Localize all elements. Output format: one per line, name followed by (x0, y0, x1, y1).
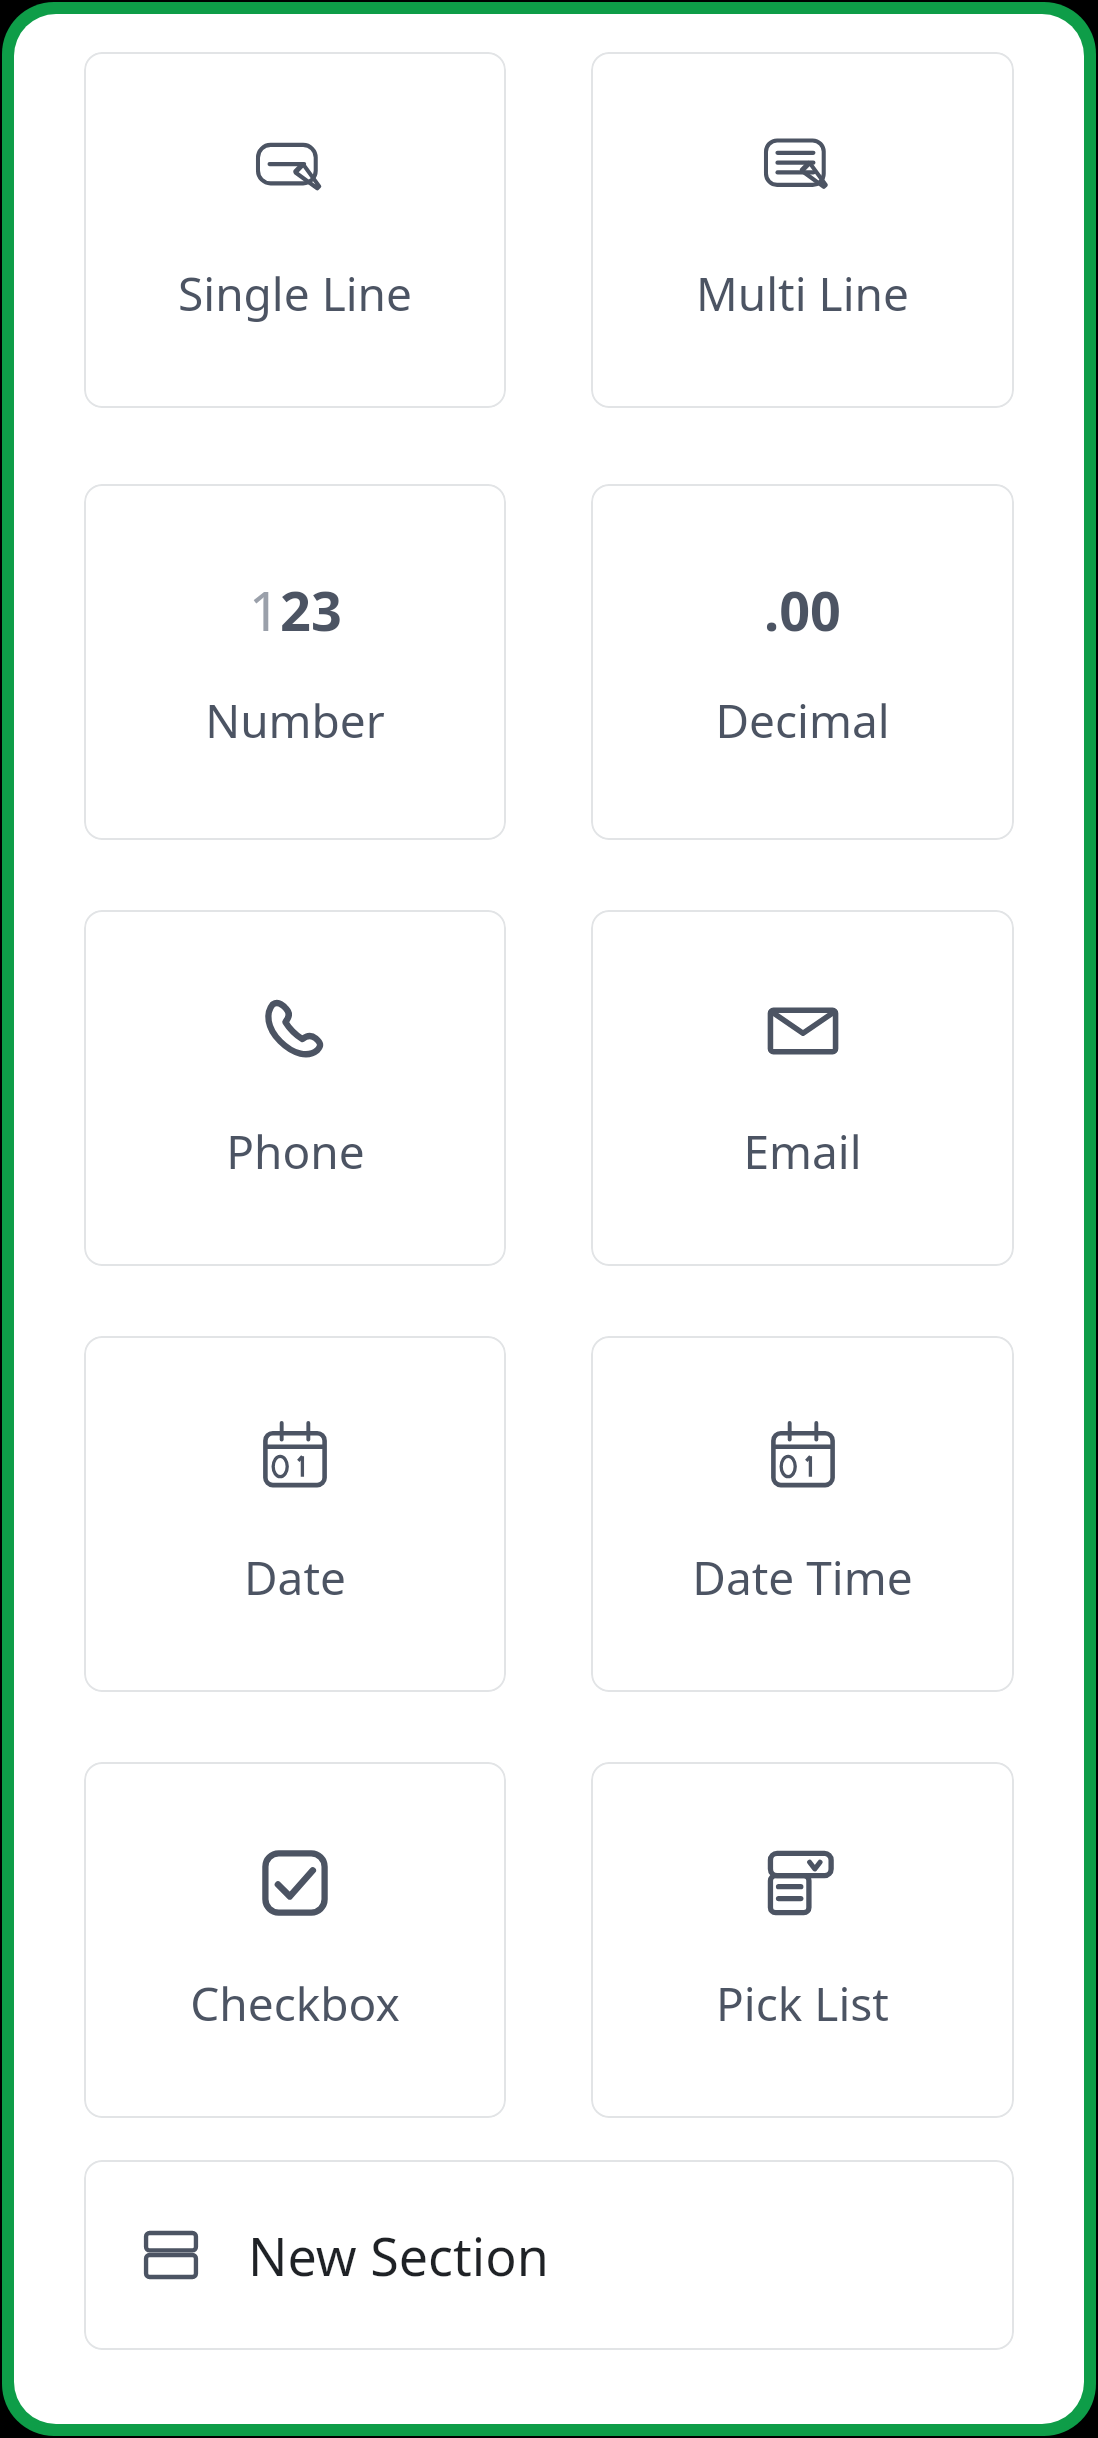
other: Calendar (258, 1420, 332, 1494)
staticText: Email (743, 1120, 862, 1183)
staticText: .00 (764, 573, 841, 647)
other: Checkbox (258, 1846, 332, 1920)
other: New Section (142, 2226, 200, 2284)
button[interactable]: Multi Line (591, 52, 1014, 408)
button[interactable]: Calendar (84, 1336, 506, 1692)
staticText: Date Time (692, 1546, 913, 1609)
button[interactable]: Phone (84, 910, 506, 1266)
button[interactable]: New Section (84, 2160, 1014, 2350)
button[interactable]: Checkbox (84, 1762, 506, 2118)
staticText: Checkbox (190, 1972, 400, 2035)
other: Email (766, 994, 840, 1068)
other: Phone (258, 994, 332, 1068)
staticText: Date (244, 1546, 346, 1609)
button[interactable]: Single Line (84, 52, 506, 408)
other: Pick List (766, 1846, 840, 1920)
button[interactable]: 1 (84, 484, 506, 840)
staticText: Multi Line (696, 262, 909, 325)
staticText: Single Line (178, 262, 412, 325)
button[interactable]: .00 (591, 484, 1014, 840)
other: Multi Line (766, 136, 840, 210)
staticText: Phone (226, 1120, 365, 1183)
button[interactable]: Email (591, 910, 1014, 1266)
staticText: 23 (280, 573, 342, 647)
staticText: Number (205, 689, 385, 752)
other: Calendar (766, 1420, 840, 1494)
staticText: Decimal (715, 689, 890, 752)
staticText: 1 (249, 573, 280, 647)
button[interactable]: Pick List (591, 1762, 1014, 2118)
staticText: New Section (248, 2220, 549, 2291)
other: Single Line (258, 136, 332, 210)
button[interactable]: Calendar (591, 1336, 1014, 1692)
staticText: Pick List (716, 1972, 889, 2035)
